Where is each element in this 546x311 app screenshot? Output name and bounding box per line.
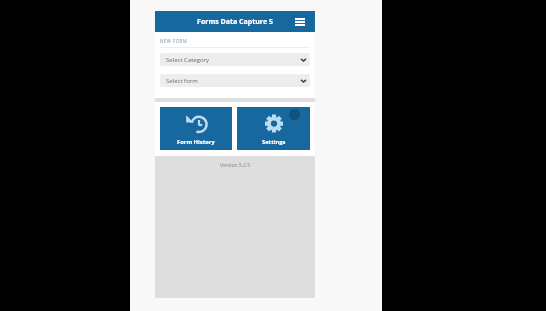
staticText: Settings xyxy=(262,138,286,146)
staticText: Select form xyxy=(166,77,301,85)
staticText: Select Category xyxy=(166,56,301,64)
staticText: Version 5.2.5 xyxy=(155,162,315,169)
button[interactable]: Settings xyxy=(237,107,310,150)
button[interactable]: Select form xyxy=(160,74,310,87)
staticText: Form History xyxy=(177,138,215,146)
button[interactable]: Form History xyxy=(160,107,232,150)
staticText: Forms Data Capture 5 xyxy=(155,17,315,27)
button[interactable]: Select Category xyxy=(160,53,310,66)
staticText: NEW FORM xyxy=(160,38,188,44)
button[interactable]: Menu xyxy=(293,14,307,30)
